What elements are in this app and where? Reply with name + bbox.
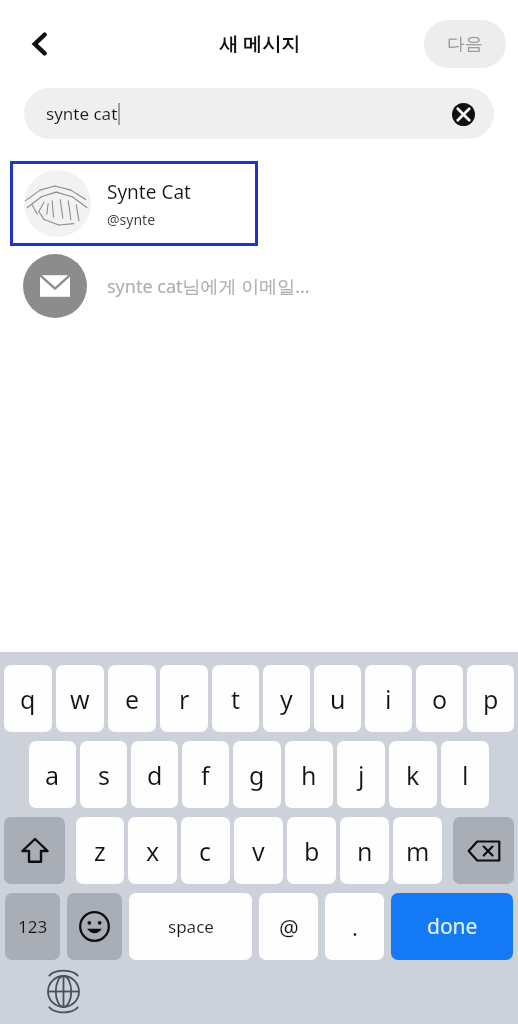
button[interactable]: s: [80, 741, 127, 808]
staticText: n: [357, 834, 373, 868]
staticText: y: [280, 682, 293, 716]
button[interactable]: t: [212, 665, 259, 732]
button[interactable]: m: [393, 817, 442, 884]
staticText: j: [358, 758, 365, 792]
staticText: m: [406, 834, 430, 868]
button[interactable]: d: [131, 741, 178, 808]
button[interactable]: Synte Cat: [10, 161, 258, 246]
button[interactable]: done: [391, 893, 513, 960]
staticText: 123: [18, 915, 48, 938]
staticText: z: [94, 834, 106, 868]
staticText: k: [406, 758, 420, 792]
button[interactable]: 다음: [424, 20, 506, 68]
button[interactable]: @: [259, 893, 318, 960]
button[interactable]: p: [467, 665, 514, 732]
staticText: u: [330, 682, 346, 716]
button[interactable]: .: [325, 893, 384, 960]
staticText: p: [483, 682, 499, 716]
staticText: b: [304, 834, 320, 868]
button[interactable]: Backspace: [453, 817, 514, 884]
button[interactable]: c: [181, 817, 230, 884]
button[interactable]: 123: [5, 893, 60, 960]
button[interactable]: v: [234, 817, 283, 884]
staticText: r: [179, 682, 190, 716]
button[interactable]: z: [76, 817, 124, 884]
staticText: 다음: [447, 33, 483, 56]
staticText: @: [279, 912, 299, 942]
staticText: a: [45, 758, 60, 792]
staticText: Synte Cat: [107, 179, 191, 205]
staticText: space: [168, 915, 214, 938]
staticText: c: [199, 834, 212, 868]
staticText: done: [427, 912, 478, 941]
button[interactable]: w: [56, 665, 104, 732]
button[interactable]: h: [285, 741, 333, 808]
staticText: s: [98, 758, 110, 792]
button[interactable]: synte cat님에게 이메일...: [0, 246, 518, 326]
staticText: x: [146, 834, 160, 868]
button[interactable]: q: [4, 665, 52, 732]
button[interactable]: g: [233, 741, 281, 808]
staticText: 새 메시지: [219, 31, 300, 57]
button[interactable]: Shift: [4, 817, 65, 884]
staticText: synte cat님에게 이메일...: [107, 274, 310, 299]
button[interactable]: b: [287, 817, 336, 884]
button[interactable]: space: [129, 893, 252, 960]
button[interactable]: k: [389, 741, 437, 808]
staticText: e: [125, 682, 140, 716]
staticText: l: [462, 758, 469, 792]
button[interactable]: r: [160, 665, 208, 732]
staticText: v: [252, 834, 265, 868]
button[interactable]: Clear text: [448, 99, 478, 129]
button[interactable]: Change keyboard language: [40, 968, 86, 1014]
staticText: f: [201, 758, 210, 792]
staticText: h: [301, 758, 317, 792]
button[interactable]: o: [416, 665, 463, 732]
button[interactable]: f: [182, 741, 229, 808]
staticText: o: [432, 682, 448, 716]
staticText: q: [20, 682, 36, 716]
staticText: g: [249, 758, 265, 792]
button[interactable]: i: [365, 665, 412, 732]
button[interactable]: u: [314, 665, 361, 732]
button[interactable]: Back: [14, 18, 66, 70]
button[interactable]: Emoji: [67, 893, 122, 960]
button[interactable]: j: [337, 741, 385, 808]
button[interactable]: x: [128, 817, 177, 884]
staticText: t: [231, 682, 241, 716]
button[interactable]: e: [108, 665, 156, 732]
button[interactable]: n: [340, 817, 389, 884]
button[interactable]: a: [29, 741, 76, 808]
button[interactable]: l: [441, 741, 489, 808]
staticText: @synte: [107, 210, 156, 229]
button[interactable]: synte cat: [24, 88, 494, 139]
staticText: .: [352, 912, 358, 942]
staticText: d: [147, 758, 163, 792]
staticText: synte cat: [46, 102, 118, 125]
button[interactable]: y: [263, 665, 310, 732]
staticText: w: [70, 682, 90, 716]
staticText: i: [385, 682, 392, 716]
